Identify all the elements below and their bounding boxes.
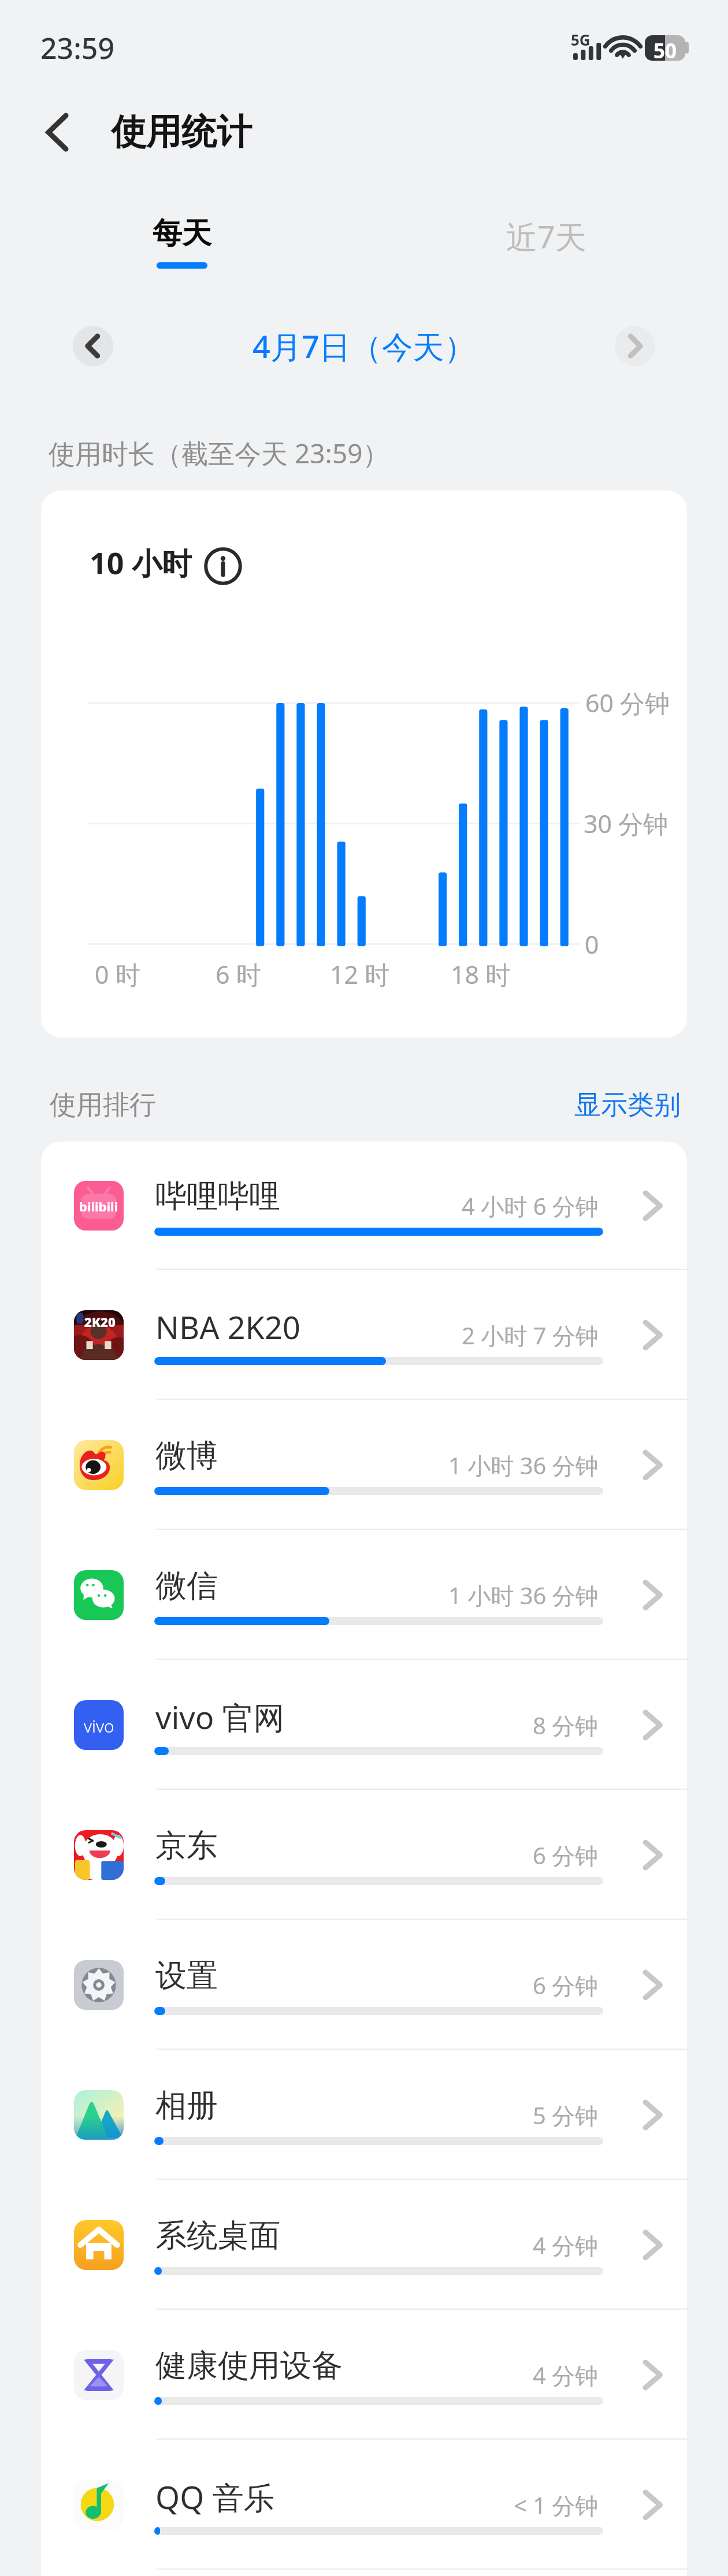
staticText: bilibili xyxy=(79,1198,118,1215)
button[interactable]: 显示类别 xyxy=(574,1088,681,1122)
staticText: 2 小时 7 分钟 xyxy=(462,1319,599,1351)
staticText: NBA 2K20 xyxy=(155,1306,300,1346)
staticText: vivo 官网 xyxy=(155,1696,285,1736)
staticText: 微信 xyxy=(155,1566,218,1605)
staticText: 系统桌面 xyxy=(155,2216,280,2255)
staticText: 显示类别 xyxy=(574,1088,681,1122)
staticText: 5G xyxy=(571,29,590,50)
staticText: 相册 xyxy=(155,2086,218,2125)
staticText: 京东 xyxy=(155,1826,218,1865)
staticText: 30 分钟 xyxy=(584,806,668,841)
button[interactable]: 微博 xyxy=(41,1400,687,1530)
button[interactable]: vivo xyxy=(41,1660,687,1790)
staticText: 2K20 xyxy=(84,1313,116,1330)
staticText: 使用排行 xyxy=(50,1088,156,1122)
button[interactable]: Back xyxy=(35,109,81,155)
staticText: 近7天 xyxy=(506,215,586,258)
staticText: 60 分钟 xyxy=(585,686,670,720)
button[interactable]: 健康使用设备 xyxy=(41,2310,687,2440)
staticText: 23:59 xyxy=(40,28,114,68)
staticText: 18 时 xyxy=(451,957,511,991)
staticText: 微博 xyxy=(155,1436,218,1475)
staticText: < 1 分钟 xyxy=(514,2489,599,2521)
button[interactable]: 设置 xyxy=(41,1920,687,2050)
staticText: QQ 音乐 xyxy=(155,2475,275,2516)
button[interactable]: 相册 xyxy=(41,2050,687,2180)
button[interactable]: 每天 xyxy=(0,186,364,269)
staticText: 使用时长（截至今天 23:59） xyxy=(49,435,389,471)
button[interactable]: bilibili xyxy=(41,1142,687,1270)
staticText: vivo xyxy=(84,1714,114,1738)
staticText: 4 小时 6 分钟 xyxy=(462,1190,599,1222)
staticText: 6 时 xyxy=(216,957,261,991)
staticText: 1 小时 36 分钟 xyxy=(448,1449,599,1481)
button[interactable]: Next day xyxy=(615,326,655,366)
staticText: 4 分钟 xyxy=(533,2359,599,2391)
staticText: 每天 xyxy=(153,215,211,252)
staticText: 设置 xyxy=(155,1956,218,1995)
staticText: 8 分钟 xyxy=(533,1709,599,1741)
staticText: 0 xyxy=(585,927,599,961)
button[interactable]: 微信 xyxy=(41,1530,687,1660)
staticText: 6 分钟 xyxy=(533,1969,599,2001)
button[interactable]: 京东 xyxy=(41,1790,687,1920)
staticText: 4月7日（今天） xyxy=(252,325,476,367)
button[interactable]: QQ 音乐 xyxy=(41,2440,687,2570)
button[interactable]: 近7天 xyxy=(364,186,728,268)
staticText: 4 分钟 xyxy=(533,2229,599,2261)
button[interactable]: Previous day xyxy=(73,326,113,366)
staticText: 0 时 xyxy=(95,957,140,991)
button[interactable]: 系统桌面 xyxy=(41,2180,687,2310)
button[interactable]: 2K20 xyxy=(41,1270,687,1400)
staticText: 哔哩哔哩 xyxy=(155,1177,280,1216)
staticText: 健康使用设备 xyxy=(155,2346,343,2385)
staticText: 使用统计 xyxy=(111,110,252,154)
staticText: 10 小时 xyxy=(90,542,192,583)
staticText: 5 分钟 xyxy=(533,2099,599,2131)
staticText: 6 分钟 xyxy=(533,1839,599,1871)
staticText: 50 xyxy=(653,37,677,65)
staticText: 1 小时 36 分钟 xyxy=(448,1579,599,1611)
staticText: 12 时 xyxy=(330,957,390,991)
